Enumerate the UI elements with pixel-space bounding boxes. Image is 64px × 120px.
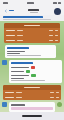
button[interactable]: [0, 15, 64, 21]
button[interactable]: Back: [3, 8, 9, 14]
button[interactable]: [9, 60, 62, 83]
button[interactable]: Profile: [53, 7, 61, 15]
button[interactable]: [3, 85, 61, 100]
button[interactable]: Sender avatar: [2, 102, 7, 107]
button[interactable]: [5, 45, 56, 58]
button[interactable]: [9, 102, 55, 112]
button[interactable]: Sender avatar: [2, 60, 7, 65]
button[interactable]: [4, 23, 60, 43]
button[interactable]: Contact: [57, 102, 62, 107]
